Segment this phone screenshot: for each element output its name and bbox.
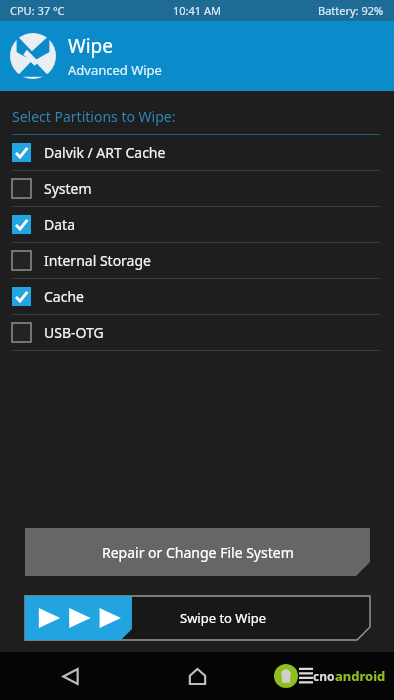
- staticText: Repair or Change File System: [102, 543, 294, 562]
- staticText: CPU: 37 °C: [10, 3, 65, 18]
- button[interactable]: Repair or Change File System: [25, 528, 370, 576]
- staticText: Swipe to Wipe: [180, 609, 267, 627]
- button[interactable]: Home: [175, 654, 219, 698]
- button[interactable]: USB-OTG: [0, 315, 394, 351]
- staticText: Wipe: [68, 33, 113, 59]
- button[interactable]: Dalvik / ART Cache: [0, 135, 394, 171]
- button[interactable]: Swipe to Wipe: [25, 596, 370, 640]
- staticText: Cache: [44, 287, 84, 306]
- staticText: Advanced Wipe: [68, 61, 162, 79]
- button[interactable]: Data: [0, 207, 394, 243]
- button[interactable]: System: [0, 171, 394, 207]
- button[interactable]: Back: [48, 654, 92, 698]
- staticText: Internal Storage: [44, 251, 151, 270]
- button[interactable]: Internal Storage: [0, 243, 394, 279]
- button[interactable]: Wipe: [0, 21, 394, 91]
- staticText: Battery: 92%: [318, 3, 384, 18]
- staticText: USB-OTG: [44, 323, 104, 342]
- button[interactable]: Cache: [0, 279, 394, 315]
- staticText: 10:41 AM: [173, 3, 221, 18]
- staticText: Dalvik / ART Cache: [44, 143, 166, 162]
- staticText: Data: [44, 215, 75, 234]
- staticText: System: [44, 179, 92, 198]
- staticText: cno: [313, 668, 335, 684]
- staticText: Select Partitions to Wipe:: [12, 107, 176, 126]
- staticText: android: [335, 667, 386, 685]
